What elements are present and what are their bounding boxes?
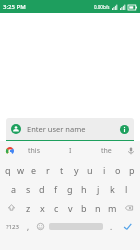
button[interactable]: f xyxy=(49,179,63,198)
button[interactable]: m xyxy=(105,198,119,217)
button[interactable]: i xyxy=(97,160,111,179)
staticText: I xyxy=(69,146,72,156)
staticText: p xyxy=(129,164,135,176)
button[interactable]: g xyxy=(63,179,77,198)
button[interactable]: b xyxy=(77,198,91,217)
staticText: z xyxy=(26,202,31,214)
button[interactable]: the xyxy=(88,141,124,160)
staticText: i xyxy=(103,164,106,176)
staticText: . xyxy=(110,221,113,232)
staticText: ?123 xyxy=(6,223,19,231)
staticText: the xyxy=(101,146,112,156)
button[interactable]: d xyxy=(35,179,49,198)
button[interactable]: Google xyxy=(3,144,16,157)
button[interactable]: Backspace xyxy=(119,198,139,217)
button[interactable]: q xyxy=(1,160,14,179)
button[interactable]: y xyxy=(69,160,83,179)
staticText: k xyxy=(110,183,115,195)
button[interactable]: User xyxy=(6,118,134,140)
staticText: s xyxy=(26,183,31,195)
staticText: l xyxy=(125,183,128,195)
staticText: n xyxy=(95,202,101,214)
staticText: j xyxy=(97,183,100,195)
button[interactable]: Shift xyxy=(1,198,21,217)
staticText: this xyxy=(28,146,41,156)
other: Info xyxy=(120,125,129,134)
staticText: 3:25 PM xyxy=(3,3,26,11)
staticText: d xyxy=(39,183,45,195)
other: User xyxy=(11,124,21,134)
button[interactable]: Done xyxy=(117,217,138,236)
button[interactable]: a xyxy=(7,179,21,198)
button[interactable]: . xyxy=(105,217,117,236)
button[interactable]: Emoji xyxy=(34,217,47,236)
staticText: w xyxy=(17,164,25,176)
staticText: v xyxy=(68,202,73,214)
staticText: t xyxy=(60,164,64,176)
staticText: c xyxy=(54,202,59,214)
button[interactable]: s xyxy=(21,179,35,198)
button[interactable]: I xyxy=(52,141,88,160)
button[interactable]: v xyxy=(63,198,77,217)
staticText: q xyxy=(5,164,11,176)
button[interactable]: w xyxy=(14,160,27,179)
button[interactable]: u xyxy=(83,160,97,179)
staticText: u xyxy=(87,164,93,176)
button[interactable]: p xyxy=(125,160,139,179)
button[interactable]: , xyxy=(22,217,34,236)
staticText: g xyxy=(67,183,73,195)
button[interactable]: e xyxy=(27,160,41,179)
staticText: f xyxy=(54,183,58,195)
staticText: h xyxy=(81,183,87,195)
button[interactable]: r xyxy=(41,160,55,179)
button[interactable]: k xyxy=(105,179,119,198)
staticText: m xyxy=(108,202,117,214)
button[interactable]: n xyxy=(91,198,105,217)
button[interactable]: ?123 xyxy=(2,217,22,236)
staticText: 0.00b/s xyxy=(94,4,110,10)
button[interactable]: c xyxy=(49,198,63,217)
staticText: b xyxy=(81,202,87,214)
button[interactable]: x xyxy=(35,198,49,217)
staticText: x xyxy=(40,202,45,214)
button[interactable]: l xyxy=(119,179,133,198)
button[interactable]: o xyxy=(111,160,125,179)
button[interactable]: this xyxy=(16,141,52,160)
staticText: r xyxy=(46,164,50,176)
staticText: o xyxy=(115,164,121,176)
staticText: Enter user name xyxy=(27,124,86,134)
staticText: y xyxy=(74,164,79,176)
staticText: a xyxy=(11,183,17,195)
button[interactable]: t xyxy=(55,160,69,179)
button[interactable]: h xyxy=(77,179,91,198)
staticText: e xyxy=(31,164,37,176)
button[interactable]: j xyxy=(91,179,105,198)
staticText: , xyxy=(27,221,30,232)
button[interactable]: z xyxy=(21,198,35,217)
button[interactable]: Voice input xyxy=(124,144,137,157)
